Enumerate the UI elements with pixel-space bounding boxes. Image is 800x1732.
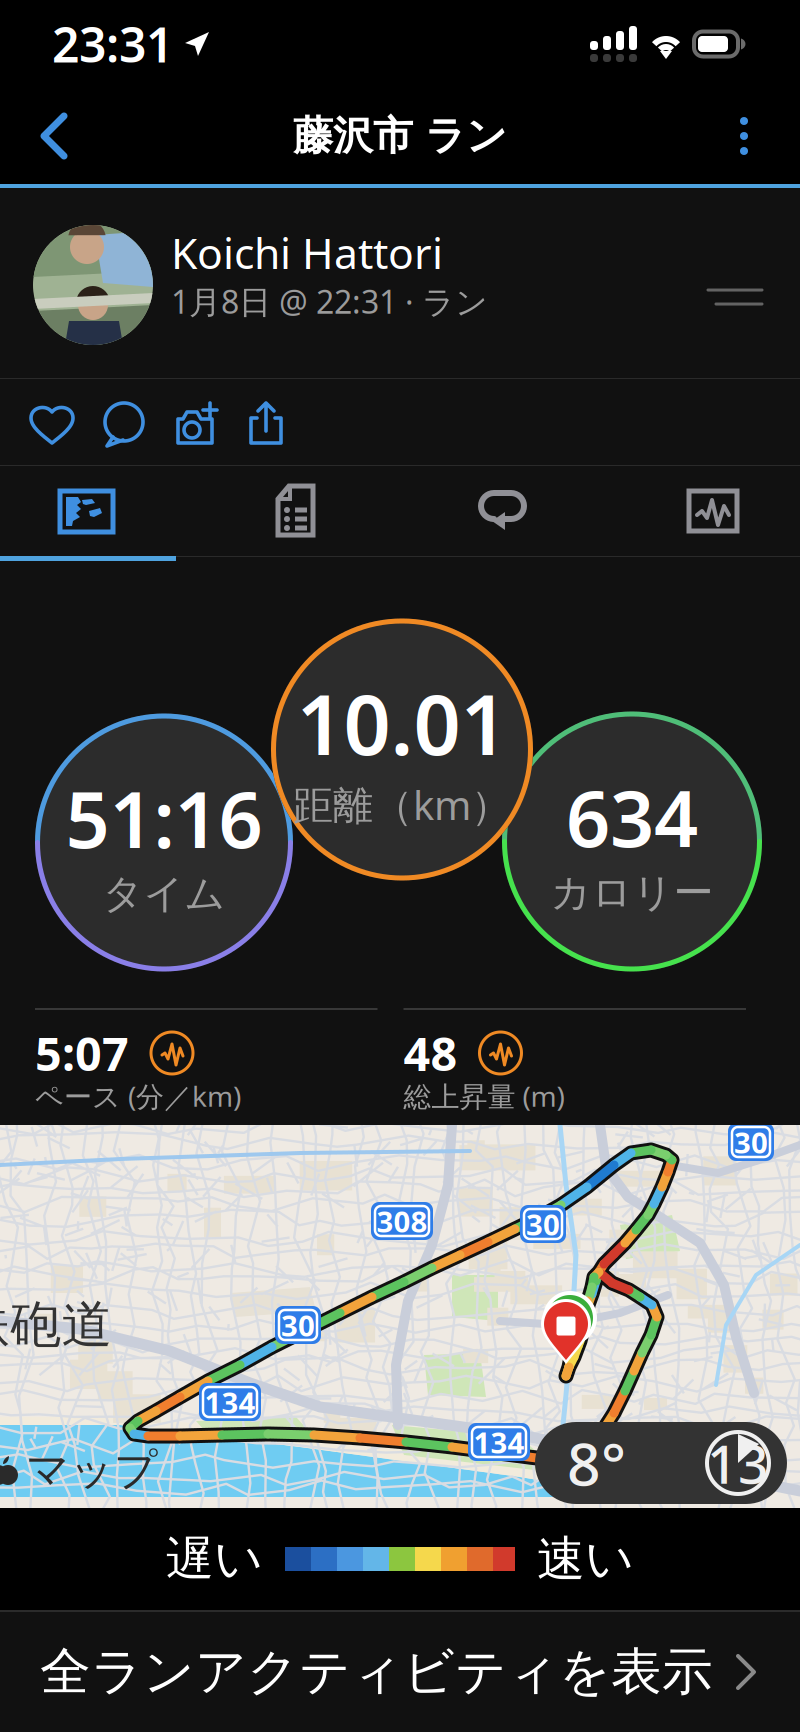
staticText: 30 xyxy=(281,1305,315,1344)
staticText: ペース (分／km) xyxy=(35,1077,241,1115)
button[interactable]: Analysis xyxy=(613,466,800,556)
button[interactable]: 全ランアクティビティを表示 xyxy=(0,1612,800,1732)
button[interactable]: Laps xyxy=(405,466,605,556)
staticText: 134 xyxy=(473,1422,524,1461)
staticText: マップ xyxy=(26,1444,158,1496)
button[interactable]: Add photo xyxy=(159,386,231,458)
button[interactable]: Splits xyxy=(196,466,396,556)
button[interactable]: Overview xyxy=(0,466,186,556)
staticText: 鉄砲道 xyxy=(0,1294,112,1356)
staticText: 距離（km） xyxy=(293,778,511,831)
staticText: 全ランアクティビティを表示 xyxy=(40,1641,713,1703)
staticText: タイム xyxy=(102,869,225,918)
staticText: 23:31 xyxy=(52,12,173,76)
staticText: 308 xyxy=(376,1201,427,1240)
staticText: 総上昇量 (m) xyxy=(403,1077,564,1115)
staticText: Koichi Hattori xyxy=(171,224,443,281)
button[interactable]: More options xyxy=(706,88,782,184)
button[interactable]: Share xyxy=(230,386,302,458)
staticText: 1月8日 @ 22:31 · ラン xyxy=(171,280,488,322)
staticText: 134 xyxy=(204,1382,255,1421)
staticText: 30 xyxy=(526,1204,560,1243)
staticText: 遅い xyxy=(166,1529,263,1588)
button[interactable]: Comment xyxy=(87,386,159,458)
staticText: 8° xyxy=(567,1424,626,1502)
staticText: 藤沢市 ラン xyxy=(293,111,507,160)
staticText: 速い xyxy=(537,1529,634,1588)
button[interactable]: Koichi Hattori xyxy=(0,188,800,378)
button[interactable]: Back xyxy=(18,88,94,184)
staticText: 48 xyxy=(403,1022,457,1084)
staticText: 10.01 xyxy=(296,668,507,778)
staticText: 30 xyxy=(734,1122,768,1161)
staticText: 5:07 xyxy=(35,1022,129,1084)
staticText: 51:16 xyxy=(65,767,262,869)
staticText: 13 xyxy=(707,1428,769,1498)
staticText: カロリー xyxy=(550,868,713,917)
staticText: 634 xyxy=(566,766,698,868)
button[interactable]: Like xyxy=(16,386,88,458)
